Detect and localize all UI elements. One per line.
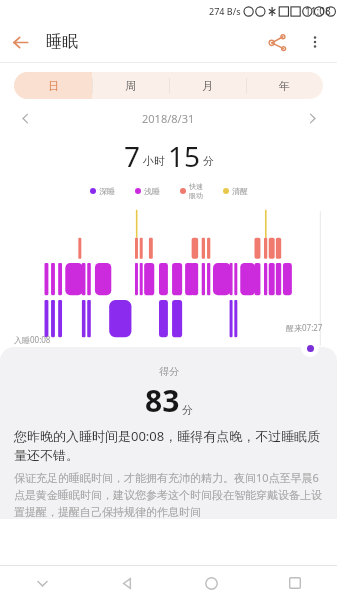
- button[interactable]: 月: [169, 72, 246, 99]
- staticText: 保证充足的睡眠时间，才能拥有充沛的精力。夜间10点至早晨6点是黄金睡眠时间，建议…: [14, 470, 323, 519]
- button[interactable]: Share: [257, 22, 297, 62]
- staticText: 分: [182, 403, 193, 417]
- button[interactable]: Previous day: [14, 107, 36, 129]
- button[interactable]: Back: [0, 22, 40, 62]
- staticText: 2018/8/31: [142, 111, 195, 126]
- staticText: 274 B/s: [209, 5, 241, 17]
- staticText: 入睡00:08: [14, 334, 51, 345]
- staticText: 眼动: [189, 191, 203, 200]
- button[interactable]: Next day: [301, 107, 323, 129]
- button[interactable]: 周: [92, 72, 169, 99]
- button[interactable]: Back: [85, 566, 169, 600]
- staticText: 小时: [143, 154, 165, 168]
- button[interactable]: Recents: [253, 566, 337, 600]
- button[interactable]: Home: [169, 566, 253, 600]
- button[interactable]: 日: [14, 72, 92, 99]
- staticText: 得分: [159, 365, 179, 378]
- staticText: 83: [145, 380, 180, 421]
- staticText: 年: [279, 79, 290, 93]
- staticText: 7: [124, 137, 141, 171]
- staticText: 浅睡: [144, 186, 160, 196]
- button[interactable]: 年: [246, 72, 323, 99]
- staticText: 快速: [189, 182, 203, 191]
- button[interactable]: More options: [297, 24, 333, 60]
- button[interactable]: 得分: [0, 347, 337, 519]
- staticText: 您昨晚的入睡时间是00:08，睡得有点晚，不过睡眠质量还不错。: [14, 427, 323, 464]
- staticText: 15: [168, 137, 201, 171]
- staticText: 睡眠: [46, 32, 78, 52]
- staticText: 月: [202, 79, 213, 93]
- staticText: 清醒: [232, 186, 248, 196]
- staticText: 日: [48, 79, 59, 93]
- staticText: 深睡: [99, 186, 115, 196]
- staticText: 周: [125, 79, 136, 93]
- staticText: 醒来07:27: [286, 322, 323, 333]
- button[interactable]: Hide: [0, 566, 85, 600]
- staticText: 11:08: [305, 4, 331, 18]
- staticText: 分: [203, 154, 214, 168]
